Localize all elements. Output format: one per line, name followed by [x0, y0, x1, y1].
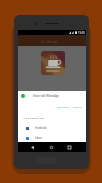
button[interactable]: JUST ONCE	[56, 104, 71, 109]
staticText: Share with WhatsApp	[33, 94, 60, 98]
button[interactable]: Share with WhatsApp	[18, 91, 86, 101]
button[interactable]: ALWAYS	[72, 104, 84, 109]
staticText: ALWAYS	[73, 105, 83, 108]
button[interactable]: Back	[26, 142, 38, 152]
button[interactable]: Home	[45, 142, 57, 152]
staticText: Facebook	[35, 126, 47, 130]
button[interactable]: Recent apps	[63, 142, 75, 152]
staticText: Inbox	[35, 136, 42, 140]
button[interactable]: Inbox	[18, 133, 86, 142]
staticText: JUST ONCE	[57, 105, 70, 108]
staticText: 19:05	[78, 31, 85, 35]
staticText: Tea Recipe	[41, 39, 58, 43]
staticText: Use a different app	[23, 116, 45, 119]
button[interactable]: Facebook	[18, 123, 86, 133]
